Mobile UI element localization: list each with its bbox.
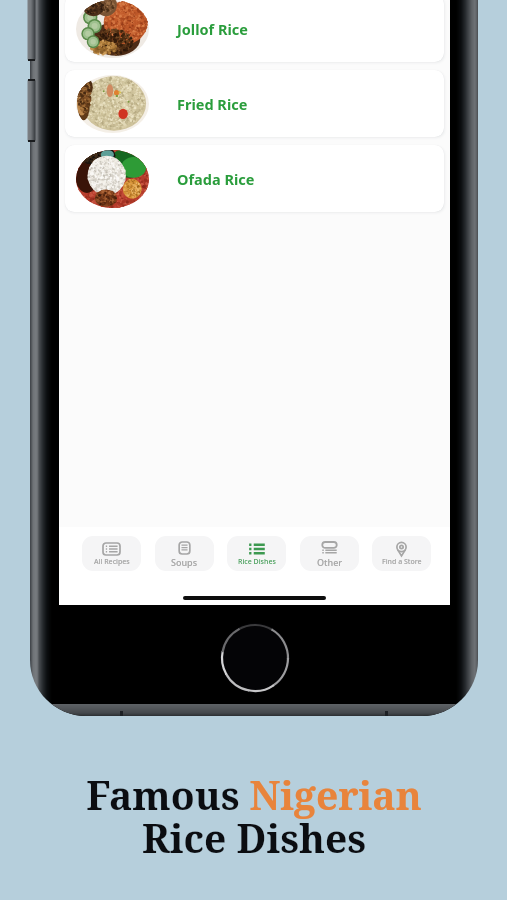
button[interactable]: Other	[300, 536, 359, 571]
button[interactable]: Rice Dishes	[227, 536, 286, 571]
staticText: Fried Rice	[177, 94, 248, 114]
button[interactable]: Jollof Rice	[65, 0, 444, 62]
staticText: All Recipes	[94, 557, 130, 567]
button[interactable]: Soups	[155, 536, 214, 571]
staticText: Jollof Rice	[177, 19, 248, 39]
staticText: Rice Dishes	[238, 557, 276, 567]
staticText: Other	[317, 556, 343, 568]
button[interactable]: Find a Store	[372, 536, 431, 571]
staticText: Soups	[171, 556, 198, 568]
staticText: Rice Dishes	[142, 811, 366, 864]
button[interactable]: All Recipes	[82, 536, 141, 571]
staticText: Famous Nigerian	[86, 768, 422, 821]
button[interactable]: Ofada Rice	[65, 145, 444, 212]
staticText: Ofada Rice	[177, 169, 255, 189]
button[interactable]: Fried Rice	[65, 70, 444, 137]
staticText: Find a Store	[382, 557, 422, 567]
